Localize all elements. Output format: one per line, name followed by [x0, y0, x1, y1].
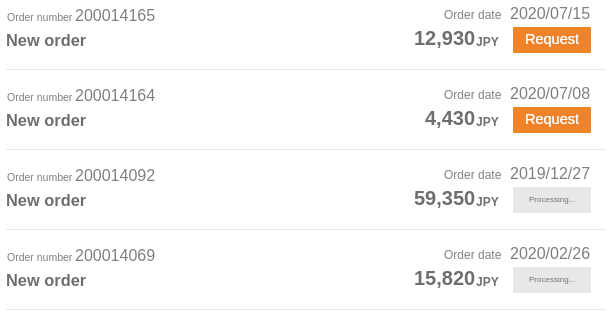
staticText: JPY — [476, 275, 499, 288]
staticText: JPY — [476, 35, 499, 48]
staticText: Request — [525, 31, 580, 47]
staticText: Request — [525, 111, 580, 127]
staticText: 2020/02/26 — [510, 245, 591, 263]
staticText: Order date — [444, 168, 502, 181]
staticText: New order — [6, 271, 87, 289]
staticText: Order number — [7, 251, 73, 263]
staticText: Order number — [7, 171, 73, 183]
staticText: JPY — [476, 195, 499, 208]
staticText: New order — [6, 191, 87, 209]
staticText: 200014164 — [75, 87, 156, 105]
staticText: Order date — [444, 248, 502, 261]
button[interactable]: Request — [513, 27, 591, 53]
staticText: 59,350 — [414, 187, 476, 209]
staticText: 4,430 — [425, 107, 476, 129]
button[interactable]: Processing... — [513, 267, 591, 293]
staticText: Processing... — [529, 275, 576, 284]
staticText: JPY — [476, 115, 499, 128]
staticText: New order — [6, 31, 87, 49]
staticText: Processing... — [529, 195, 576, 204]
staticText: 2020/07/15 — [510, 5, 591, 23]
staticText: 12,930 — [414, 27, 476, 49]
button[interactable]: Request — [513, 107, 591, 133]
staticText: 15,820 — [414, 267, 476, 289]
button[interactable]: Order number — [0, 0, 612, 69]
staticText: Order number — [7, 11, 73, 23]
staticText: Order date — [444, 8, 502, 21]
staticText: 200014092 — [75, 167, 156, 185]
staticText: New order — [6, 111, 87, 129]
staticText: Order date — [444, 88, 502, 101]
staticText: 2020/07/08 — [510, 85, 591, 103]
staticText: Order number — [7, 91, 73, 103]
staticText: 2019/12/27 — [510, 165, 591, 183]
button[interactable]: Processing... — [513, 187, 591, 213]
button[interactable]: Order number — [0, 160, 612, 229]
button[interactable]: Order number — [0, 80, 612, 149]
staticText: 200014069 — [75, 247, 156, 265]
button[interactable]: Order number — [0, 240, 612, 309]
staticText: 200014165 — [75, 7, 156, 25]
